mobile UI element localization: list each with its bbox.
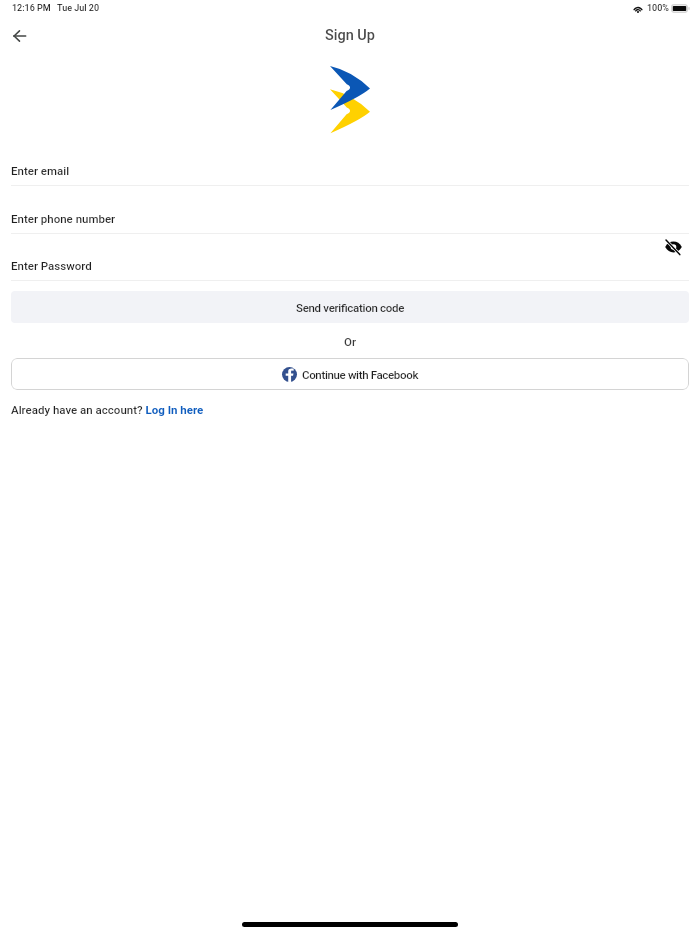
staticText: Or bbox=[344, 335, 356, 348]
staticText: Tue Jul 20 bbox=[57, 3, 100, 14]
staticText: Send verification code bbox=[296, 301, 405, 314]
button[interactable] bbox=[0, 162, 700, 185]
staticText: Enter email bbox=[11, 164, 70, 177]
button[interactable]: Back bbox=[7, 24, 31, 48]
staticText: Enter Password bbox=[11, 259, 92, 272]
staticText: Continue with Facebook bbox=[302, 368, 419, 381]
staticText: Enter phone number bbox=[11, 212, 116, 225]
button[interactable]: Continue with Facebook bbox=[11, 358, 689, 390]
staticText: 100% bbox=[647, 3, 669, 14]
button[interactable]: Already have an account? Log In here bbox=[11, 403, 204, 416]
staticText: Sign Up bbox=[325, 27, 375, 44]
button[interactable]: Show password bbox=[661, 235, 685, 259]
button[interactable]: Send verification code bbox=[11, 291, 689, 323]
button[interactable] bbox=[0, 257, 700, 280]
button[interactable] bbox=[0, 210, 700, 233]
staticText: 12:16 PM bbox=[12, 3, 51, 14]
